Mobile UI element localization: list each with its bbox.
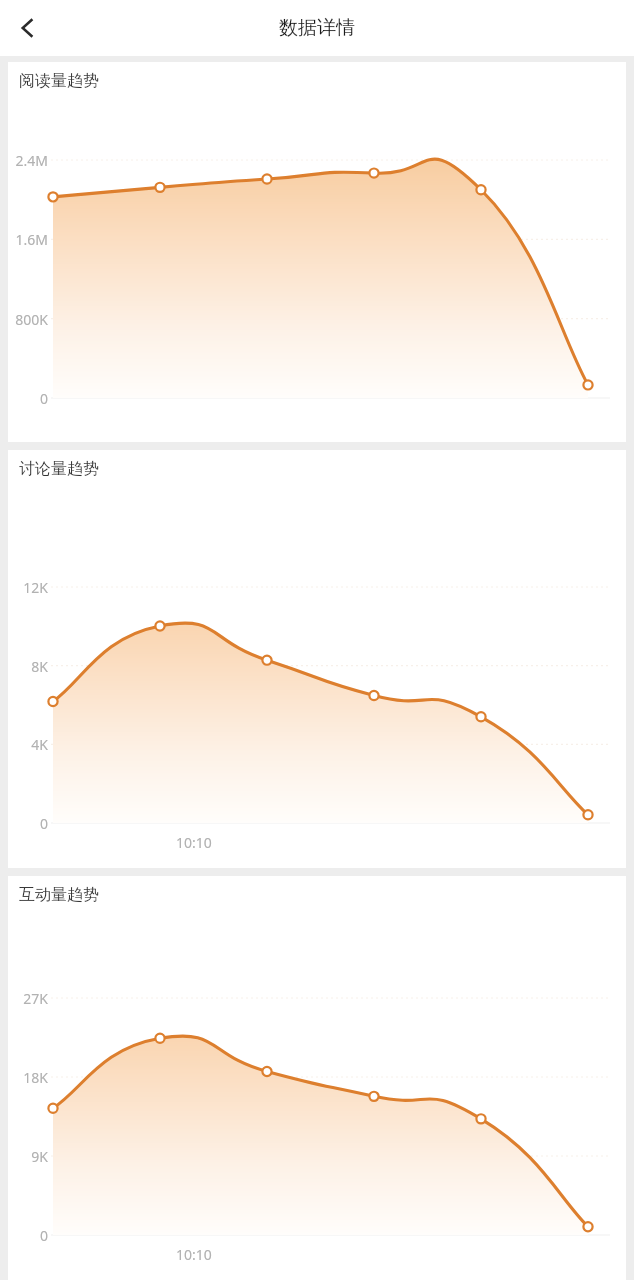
button[interactable]: Back [0, 0, 56, 56]
staticText: 12K [23, 578, 48, 597]
staticText: 8K [31, 657, 48, 676]
staticText: 互动量趋势 [19, 885, 99, 905]
button[interactable]: 讨论量趋势 [8, 450, 626, 868]
button[interactable]: 互动量趋势 [8, 876, 626, 1280]
staticText: 9K [31, 1147, 48, 1166]
staticText: 讨论量趋势 [19, 459, 99, 479]
staticText: 800K [15, 310, 48, 329]
staticText: 2.4M [15, 151, 48, 170]
staticText: 10:10 [176, 833, 212, 852]
staticText: 18K [23, 1068, 48, 1087]
staticText: 0 [39, 1226, 48, 1245]
staticText: 10:10 [176, 1245, 212, 1264]
staticText: 0 [39, 814, 48, 833]
staticText: 4K [31, 735, 48, 754]
button[interactable]: 阅读量趋势 [8, 62, 626, 442]
staticText: 阅读量趋势 [19, 71, 99, 91]
staticText: 0 [39, 389, 48, 408]
staticText: 27K [23, 989, 48, 1008]
staticText: 数据详情 [279, 16, 355, 40]
staticText: 1.6M [15, 230, 48, 249]
